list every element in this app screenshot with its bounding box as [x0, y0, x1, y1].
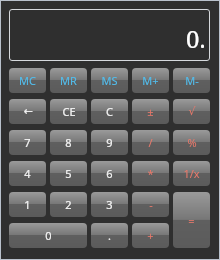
- staticText: .: [108, 228, 111, 243]
- staticText: ±: [147, 104, 154, 119]
- button[interactable]: ±: [132, 99, 169, 124]
- staticText: 1/x: [183, 166, 200, 181]
- staticText: 9: [106, 135, 113, 150]
- button[interactable]: 2: [50, 192, 87, 217]
- staticText: C: [106, 104, 113, 119]
- button[interactable]: M+: [132, 68, 169, 93]
- button[interactable]: 1: [9, 192, 46, 217]
- button[interactable]: 3: [91, 192, 128, 217]
- staticText: 7: [24, 135, 31, 150]
- staticText: -: [149, 197, 153, 212]
- button[interactable]: 0: [9, 223, 87, 248]
- button[interactable]: ←: [9, 99, 46, 124]
- staticText: +: [147, 228, 154, 243]
- button[interactable]: 4: [9, 161, 46, 186]
- button[interactable]: 9: [91, 130, 128, 155]
- button[interactable]: *: [132, 161, 169, 186]
- button[interactable]: 5: [50, 161, 87, 186]
- button[interactable]: 6: [91, 161, 128, 186]
- button[interactable]: =: [173, 192, 210, 248]
- button[interactable]: +: [132, 223, 169, 248]
- staticText: 0.: [186, 22, 206, 55]
- button[interactable]: 7: [9, 130, 46, 155]
- button[interactable]: %: [173, 130, 210, 155]
- staticText: 0: [45, 228, 52, 243]
- button[interactable]: MS: [91, 68, 128, 93]
- staticText: MR: [60, 73, 77, 88]
- button[interactable]: CE: [50, 99, 87, 124]
- staticText: MS: [101, 73, 118, 88]
- staticText: 3: [106, 197, 113, 212]
- button[interactable]: 8: [50, 130, 87, 155]
- staticText: CE: [62, 104, 76, 119]
- staticText: MC: [19, 73, 36, 88]
- button[interactable]: MR: [50, 68, 87, 93]
- staticText: 5: [65, 166, 72, 181]
- button[interactable]: C: [91, 99, 128, 124]
- button[interactable]: 1/x: [173, 161, 210, 186]
- staticText: √: [188, 105, 196, 118]
- staticText: M-: [185, 73, 199, 88]
- staticText: 6: [106, 166, 113, 181]
- staticText: 8: [65, 135, 72, 150]
- button[interactable]: M-: [173, 68, 210, 93]
- button[interactable]: .: [91, 223, 128, 248]
- staticText: ←: [23, 105, 33, 118]
- staticText: /: [148, 135, 153, 150]
- button[interactable]: -: [132, 192, 169, 217]
- staticText: M+: [142, 73, 159, 88]
- staticText: 4: [24, 166, 31, 181]
- staticText: %: [187, 135, 197, 150]
- button[interactable]: √: [173, 99, 210, 124]
- staticText: 1: [24, 197, 31, 212]
- button[interactable]: MC: [9, 68, 46, 93]
- staticText: =: [188, 213, 195, 228]
- staticText: *: [147, 166, 154, 181]
- staticText: 2: [65, 197, 72, 212]
- button[interactable]: /: [132, 130, 169, 155]
